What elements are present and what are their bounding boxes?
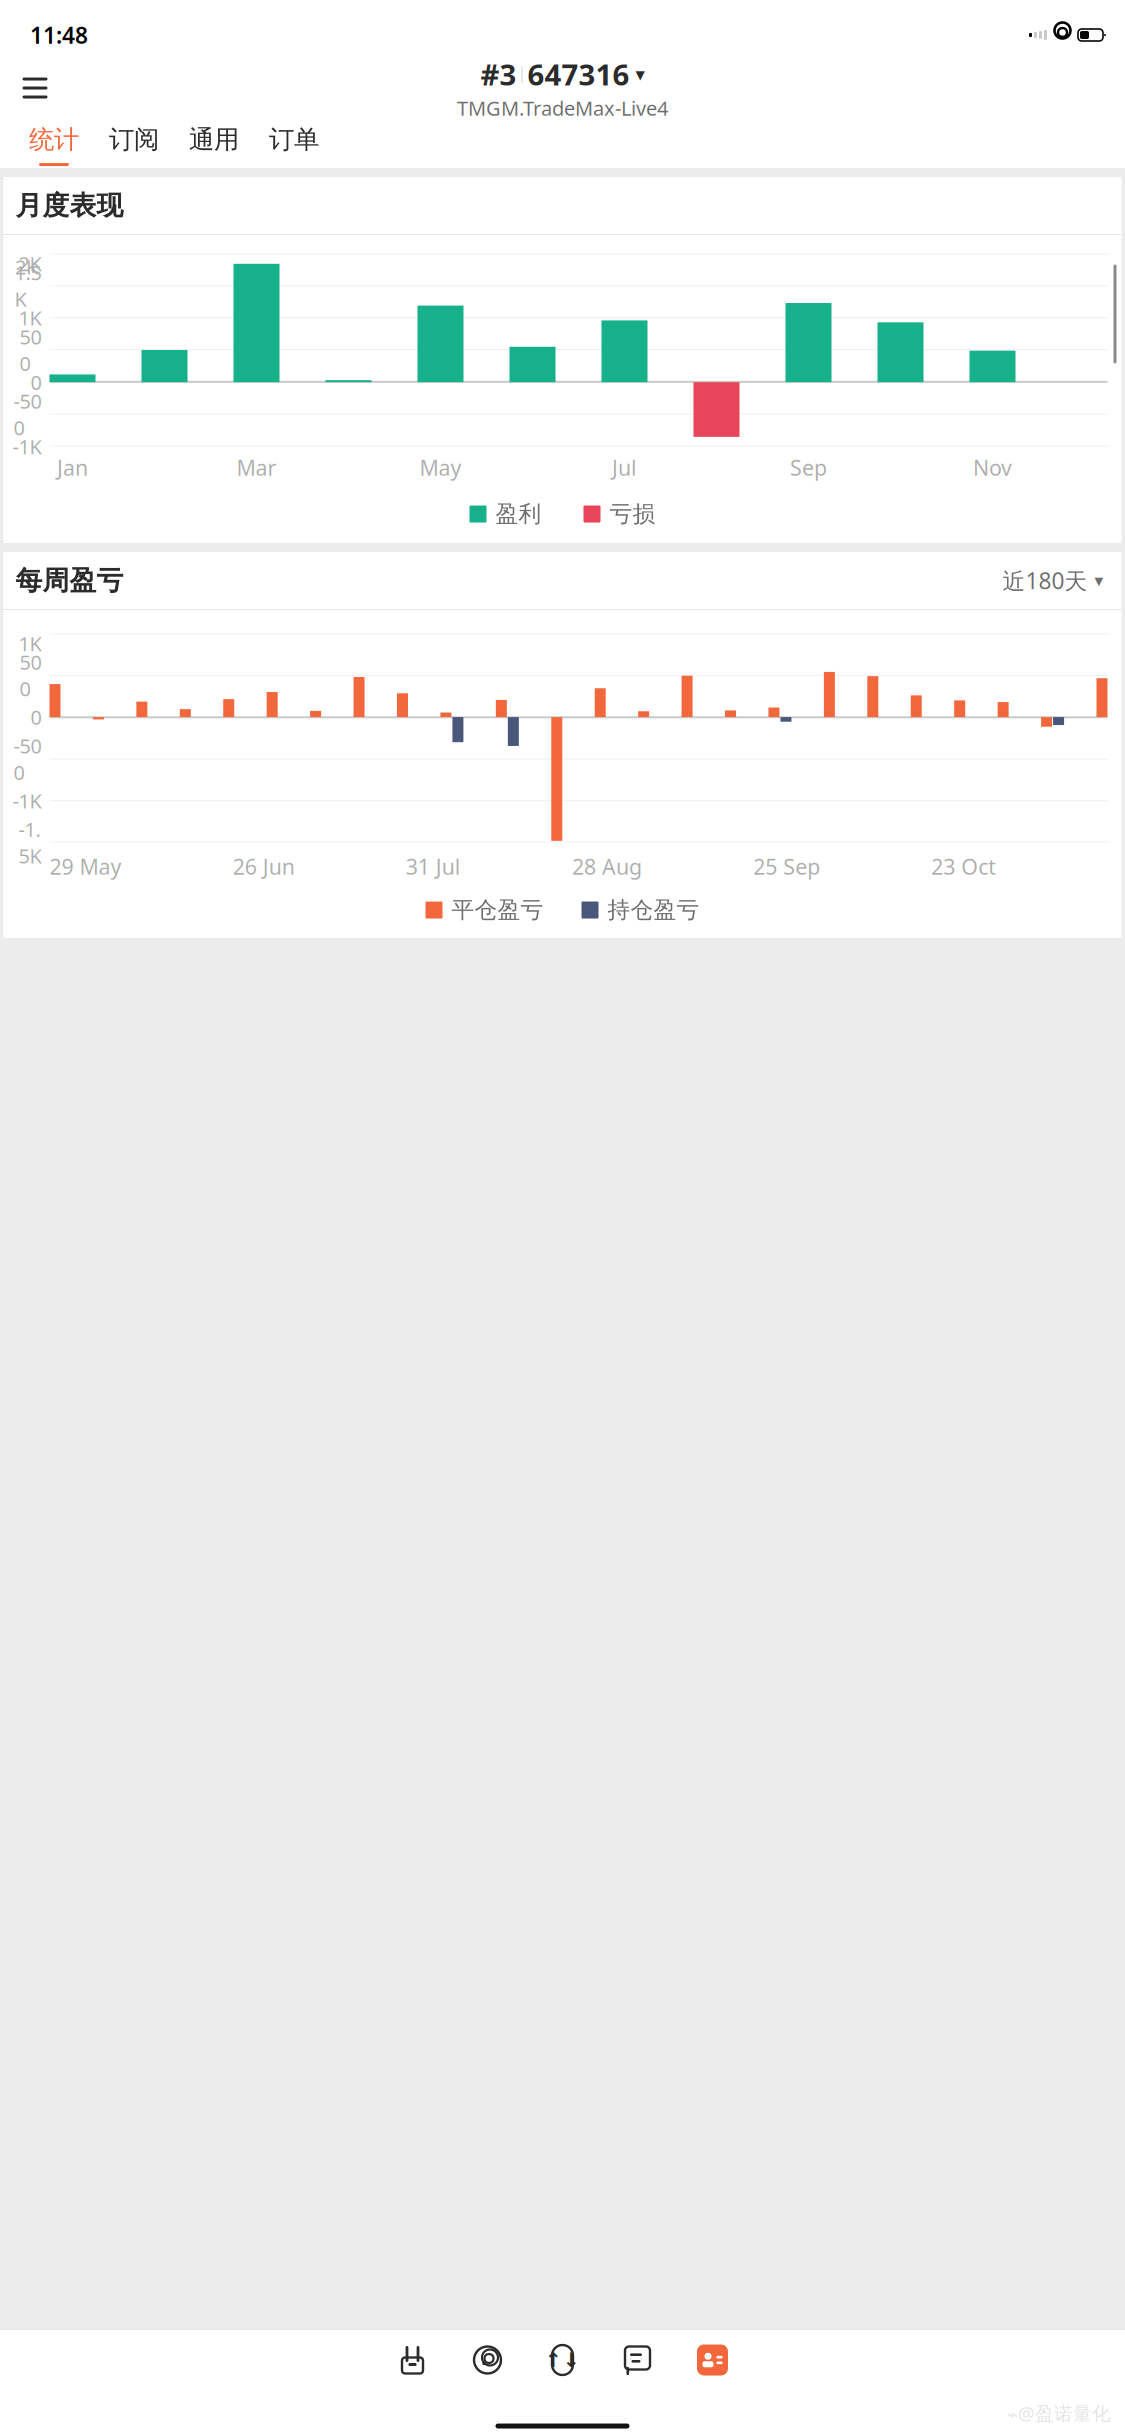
button[interactable]: 订单 xyxy=(254,119,334,168)
staticText: Nov xyxy=(973,453,1012,482)
button[interactable]: 近180天 xyxy=(998,557,1107,603)
staticText: 2K xyxy=(15,253,38,280)
staticText: 平仓盈亏 xyxy=(451,896,543,924)
staticText: -1K xyxy=(12,433,41,460)
staticText: 26 Jun xyxy=(233,852,295,881)
button[interactable]: Trade xyxy=(525,2330,600,2390)
button[interactable]: 通用 xyxy=(174,119,254,168)
staticText: ⌁@盈诺量化 xyxy=(1007,2401,1111,2425)
staticText: 月度表现 xyxy=(15,189,123,222)
staticText: Jul xyxy=(612,453,637,482)
staticText: 1K xyxy=(18,305,41,331)
staticText: 每周盈亏 xyxy=(15,564,123,597)
button[interactable]: 订阅 xyxy=(94,119,174,168)
staticText: -500 xyxy=(13,732,41,785)
staticText: 1.5K xyxy=(14,259,41,312)
button[interactable]: Menu xyxy=(8,64,62,112)
button[interactable]: Signals xyxy=(450,2330,525,2390)
button[interactable]: Messages xyxy=(600,2330,675,2390)
staticText: 2K xyxy=(18,250,41,277)
staticText: 0 xyxy=(30,369,41,395)
staticText: 11:48 xyxy=(30,20,88,50)
staticText: 近180天 xyxy=(1002,565,1087,595)
staticText: 1K xyxy=(18,630,41,657)
staticText: -1K xyxy=(12,787,41,814)
staticText: ▾ xyxy=(1094,571,1103,590)
button[interactable]: 统计 xyxy=(14,119,94,168)
staticText: Jan xyxy=(57,453,88,482)
staticText: Mar xyxy=(236,453,276,482)
staticText: 31 Jul xyxy=(406,852,461,881)
staticText: 29 May xyxy=(49,852,121,881)
staticText: 订阅 xyxy=(109,124,159,155)
staticText: -1.5K xyxy=(18,816,41,869)
staticText: 647316 xyxy=(527,55,629,94)
staticText: 28 Aug xyxy=(572,852,642,881)
staticText: 统计 xyxy=(29,124,79,155)
staticText: 500 xyxy=(19,649,41,702)
staticText: TMGM.TradeMax-Live4 xyxy=(457,95,668,121)
staticText: Sep xyxy=(790,453,827,482)
staticText: ↑ xyxy=(545,2349,562,2371)
staticText: ↓ xyxy=(563,2349,580,2371)
staticText: 500 xyxy=(19,323,41,376)
staticText: 亏损 xyxy=(609,500,655,528)
button[interactable]: Profile xyxy=(675,2330,750,2390)
staticText: 23 Oct xyxy=(931,852,996,881)
staticText: May xyxy=(419,453,461,482)
staticText: 盈利 xyxy=(495,500,541,528)
staticText: 持仓盈亏 xyxy=(607,896,699,924)
button[interactable]: Home xyxy=(375,2330,450,2390)
staticText: #3 xyxy=(480,55,516,94)
staticText: 0 xyxy=(30,704,41,730)
staticText: 25 Sep xyxy=(753,852,820,881)
staticText: -500 xyxy=(13,388,41,441)
staticText: 通用 xyxy=(189,124,239,155)
staticText: ▾ xyxy=(635,64,644,85)
staticText: 订单 xyxy=(269,124,319,155)
